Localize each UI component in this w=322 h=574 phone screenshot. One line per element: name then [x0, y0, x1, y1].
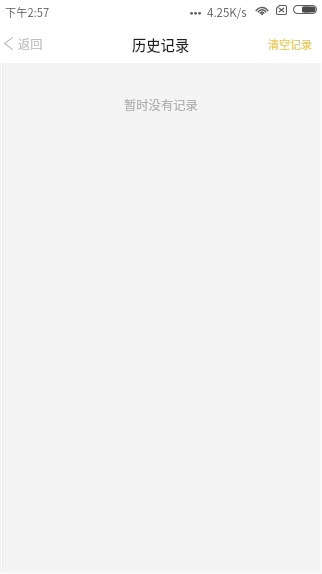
staticText: 清空记录 [268, 36, 312, 52]
staticText: 历史记录 [132, 34, 190, 55]
button[interactable]: Back [0, 24, 51, 63]
staticText: 返回 [18, 35, 43, 53]
staticText: 下午2:57 [5, 4, 50, 20]
button[interactable]: 清空记录 [258, 24, 322, 63]
staticText: 暂时没有记录 [124, 96, 198, 114]
other: Back [4, 37, 13, 50]
staticText: 4.25K/s [207, 4, 247, 21]
